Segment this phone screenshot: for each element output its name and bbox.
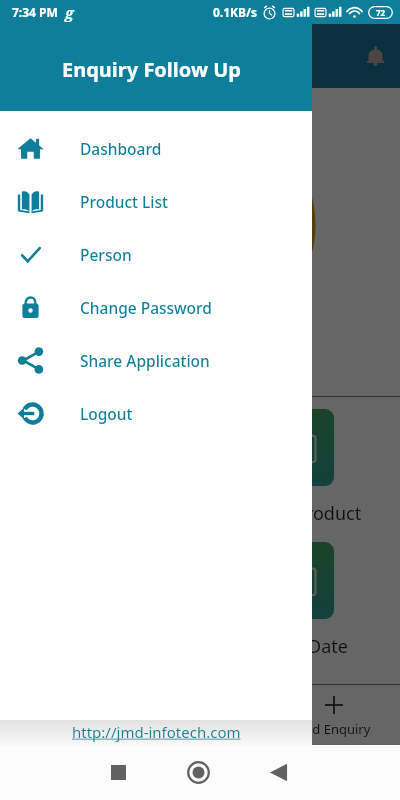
button[interactable]: Person: [0, 228, 312, 281]
button[interactable]: http://jmd-infotech.com: [72, 722, 241, 742]
staticText: Date: [308, 634, 348, 659]
button[interactable]: Change Password: [0, 281, 312, 334]
staticText: Dashboard: [80, 138, 162, 159]
staticText: 7:34 PM: [12, 4, 58, 20]
button[interactable]: Notifications: [363, 44, 388, 69]
button[interactable]: Add Enquiry: [296, 692, 371, 738]
button[interactable]: Home: [170, 745, 226, 800]
staticText: g: [65, 2, 74, 22]
staticText: Product List: [80, 191, 169, 212]
button[interactable]: Recents: [90, 745, 146, 800]
staticText: Logout: [80, 403, 133, 424]
button[interactable]: Share Application: [0, 334, 312, 387]
button[interactable]: Logout: [0, 387, 312, 440]
button[interactable]: Product List: [0, 175, 312, 228]
button[interactable]: [278, 409, 334, 486]
staticText: Add Enquiry: [296, 720, 371, 738]
button[interactable]: Back: [250, 745, 306, 800]
staticText: Share Application: [80, 350, 210, 371]
staticText: Change Password: [80, 297, 212, 318]
staticText: Enquiry Follow Up: [62, 56, 241, 83]
button[interactable]: [278, 542, 334, 619]
staticText: Person: [80, 244, 132, 265]
button[interactable]: Dashboard: [0, 122, 312, 175]
staticText: Product: [295, 501, 362, 526]
staticText: 0.1KB/s: [213, 4, 258, 20]
staticText: 72: [376, 7, 386, 18]
